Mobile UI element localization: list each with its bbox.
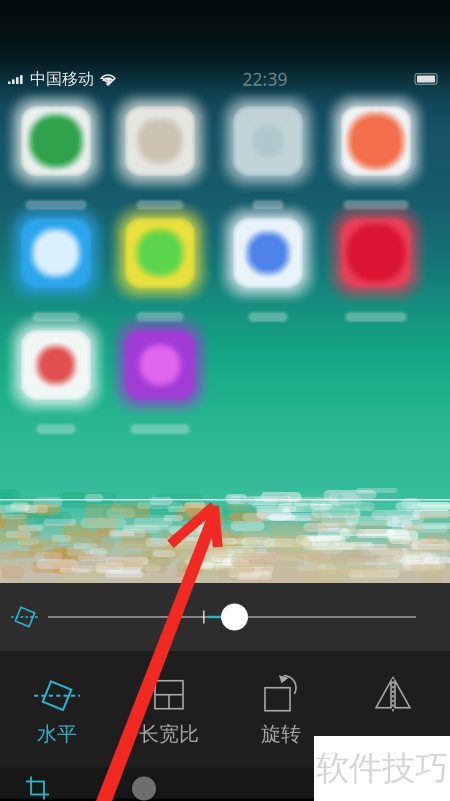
button[interactable]: 镜像 xyxy=(337,651,449,759)
staticText: 中国移动 xyxy=(30,69,94,89)
button[interactable]: 长宽比 xyxy=(113,651,225,759)
staticText: 22:39 xyxy=(242,67,287,90)
staticText: 软件技巧 xyxy=(316,748,448,789)
button[interactable]: Filters xyxy=(346,776,380,800)
button[interactable]: Crop xyxy=(26,775,52,801)
staticText: 长宽比 xyxy=(139,722,199,746)
button[interactable]: 旋转 xyxy=(225,651,337,759)
button[interactable]: 水平 xyxy=(1,651,113,759)
button[interactable]: Adjust xyxy=(132,776,156,800)
staticText: 旋转 xyxy=(261,722,301,746)
staticText: 水平 xyxy=(37,722,77,746)
button[interactable]: Straighten xyxy=(10,602,40,632)
button[interactable]: Angle xyxy=(221,603,248,630)
